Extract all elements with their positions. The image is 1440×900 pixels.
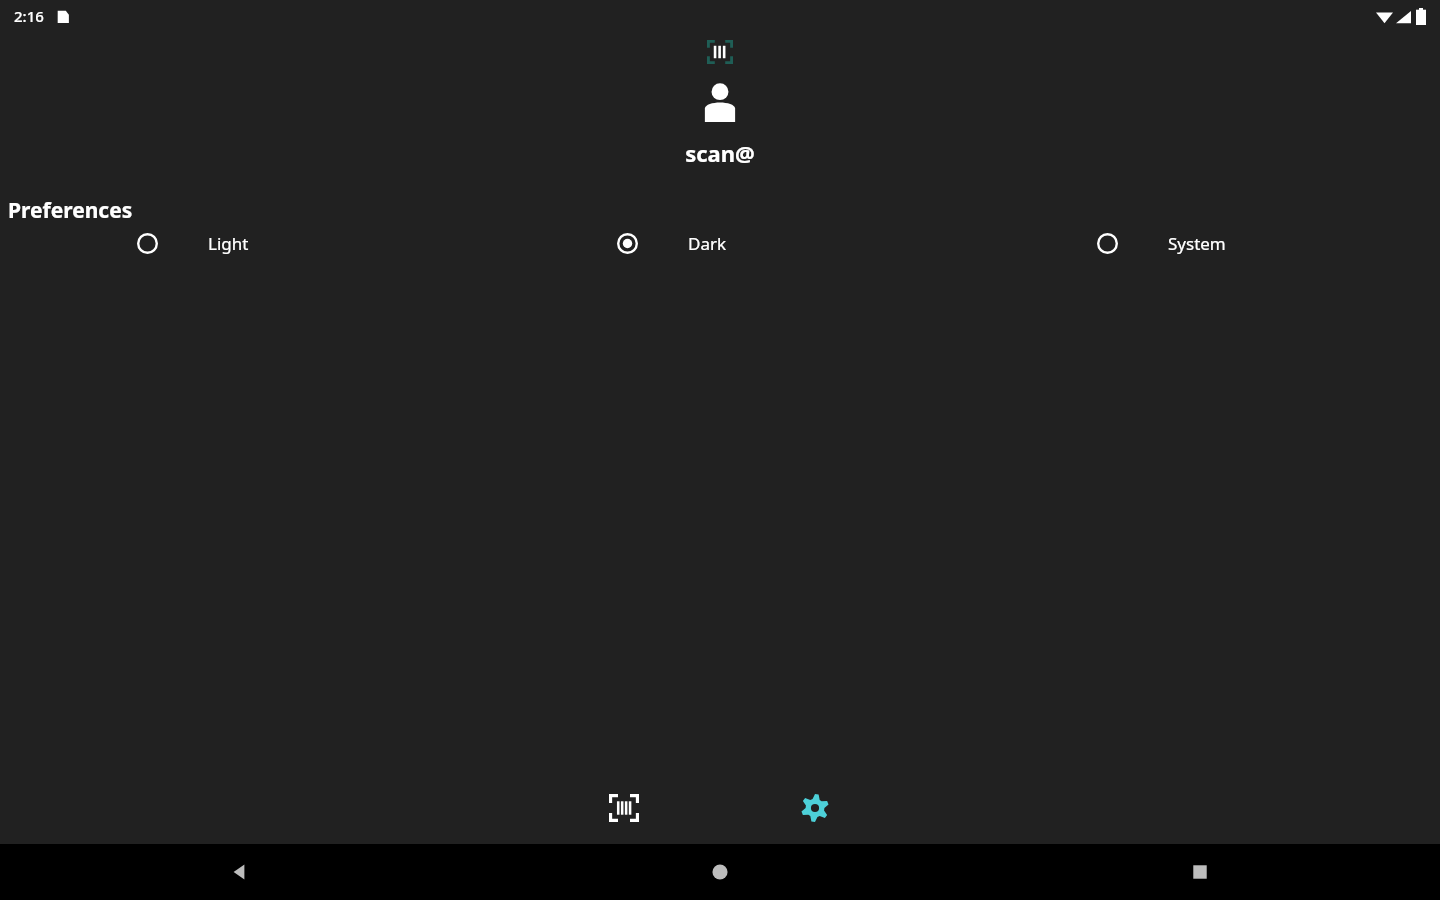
staticText: 2:16	[14, 6, 44, 26]
button[interactable]: Recent apps	[960, 844, 1440, 900]
button[interactable]: Home	[480, 844, 960, 900]
button[interactable]: Scan	[600, 784, 648, 832]
button[interactable]: System	[960, 224, 1440, 262]
staticText: scan@	[685, 138, 755, 168]
staticText: Light	[208, 232, 249, 255]
button[interactable]: Light	[0, 224, 480, 262]
staticText: System	[1168, 232, 1226, 255]
button[interactable]: Settings	[791, 784, 839, 832]
staticText: Preferences	[8, 196, 133, 225]
button[interactable]: Dark	[480, 224, 960, 262]
staticText: Dark	[688, 232, 727, 255]
button[interactable]: Back	[0, 844, 480, 900]
